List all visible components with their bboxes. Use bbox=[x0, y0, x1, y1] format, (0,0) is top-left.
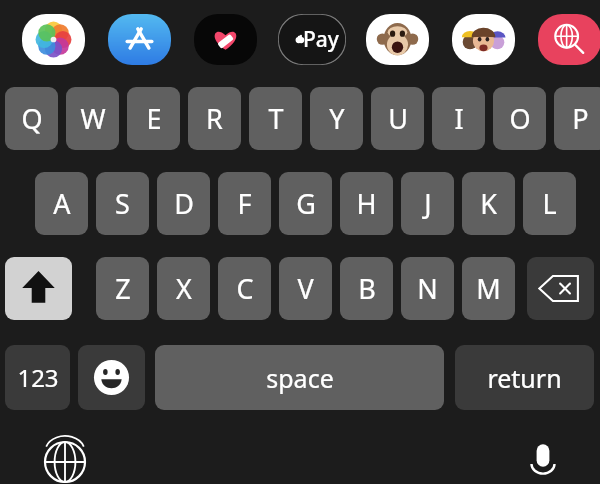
staticText: J bbox=[424, 185, 432, 222]
button[interactable]: Dictation bbox=[518, 440, 568, 484]
button[interactable]: Health bbox=[194, 14, 257, 65]
button[interactable]: Memoji stickers bbox=[452, 14, 515, 65]
staticText: S bbox=[115, 185, 130, 222]
button[interactable]: T bbox=[249, 87, 302, 150]
staticText: D bbox=[174, 185, 194, 222]
staticText: return bbox=[487, 361, 562, 395]
button[interactable]: M bbox=[462, 257, 515, 320]
button[interactable]: Y bbox=[310, 87, 363, 150]
button[interactable]: R bbox=[188, 87, 241, 150]
button[interactable]: K bbox=[462, 172, 515, 235]
button[interactable]: F bbox=[218, 172, 271, 235]
button[interactable]: Shift bbox=[5, 257, 72, 320]
button[interactable]: L bbox=[523, 172, 576, 235]
button[interactable]: Image search bbox=[538, 14, 600, 65]
button[interactable]: E bbox=[127, 87, 180, 150]
staticText: Q bbox=[21, 100, 43, 137]
staticText: F bbox=[237, 185, 252, 222]
button[interactable]: Z bbox=[96, 257, 149, 320]
staticText: B bbox=[358, 270, 376, 307]
staticText: T bbox=[268, 100, 284, 137]
staticText: space bbox=[266, 361, 334, 395]
button[interactable]: Photos bbox=[22, 14, 85, 65]
staticText: U bbox=[388, 100, 408, 137]
button[interactable]: return bbox=[455, 345, 594, 410]
staticText: L bbox=[542, 185, 557, 222]
button[interactable]: Emoji bbox=[78, 345, 145, 410]
button[interactable]: N bbox=[401, 257, 454, 320]
button[interactable]: space bbox=[155, 345, 444, 410]
button[interactable]: Delete bbox=[527, 257, 594, 320]
staticText: R bbox=[206, 100, 223, 137]
staticText: A bbox=[53, 185, 71, 222]
staticText: Pay bbox=[303, 25, 339, 54]
button[interactable]: Next keyboard bbox=[40, 440, 90, 484]
button[interactable]: Apple Pay bbox=[278, 14, 346, 65]
button[interactable]: V bbox=[279, 257, 332, 320]
staticText: N bbox=[417, 270, 438, 307]
button[interactable]: P bbox=[554, 87, 600, 150]
staticText: C bbox=[236, 270, 254, 307]
button[interactable]: B bbox=[340, 257, 393, 320]
staticText: M bbox=[476, 270, 501, 307]
button[interactable]: I bbox=[432, 87, 485, 150]
staticText: K bbox=[480, 185, 497, 222]
staticText: P bbox=[572, 100, 589, 137]
staticText: O bbox=[509, 100, 531, 137]
button[interactable]: D bbox=[157, 172, 210, 235]
staticText: W bbox=[80, 100, 106, 137]
button[interactable]: Animoji bbox=[366, 14, 429, 65]
staticText: G bbox=[296, 185, 316, 222]
button[interactable]: X bbox=[157, 257, 210, 320]
button[interactable]: App Store bbox=[108, 14, 171, 65]
button[interactable]: W bbox=[66, 87, 119, 150]
button[interactable]: 123 bbox=[5, 345, 70, 410]
button[interactable]: Q bbox=[5, 87, 58, 150]
staticText: H bbox=[356, 185, 377, 222]
staticText: Y bbox=[329, 100, 345, 137]
staticText: E bbox=[146, 100, 162, 137]
staticText: I bbox=[454, 100, 464, 137]
button[interactable]: A bbox=[35, 172, 88, 235]
staticText: 123 bbox=[17, 361, 59, 394]
button[interactable]: O bbox=[493, 87, 546, 150]
button[interactable]: C bbox=[218, 257, 271, 320]
button[interactable]: U bbox=[371, 87, 424, 150]
staticText: V bbox=[297, 270, 314, 307]
staticText: X bbox=[176, 270, 192, 307]
button[interactable]: G bbox=[279, 172, 332, 235]
staticText: Z bbox=[115, 270, 131, 307]
button[interactable]: H bbox=[340, 172, 393, 235]
button[interactable]: J bbox=[401, 172, 454, 235]
button[interactable]: S bbox=[96, 172, 149, 235]
